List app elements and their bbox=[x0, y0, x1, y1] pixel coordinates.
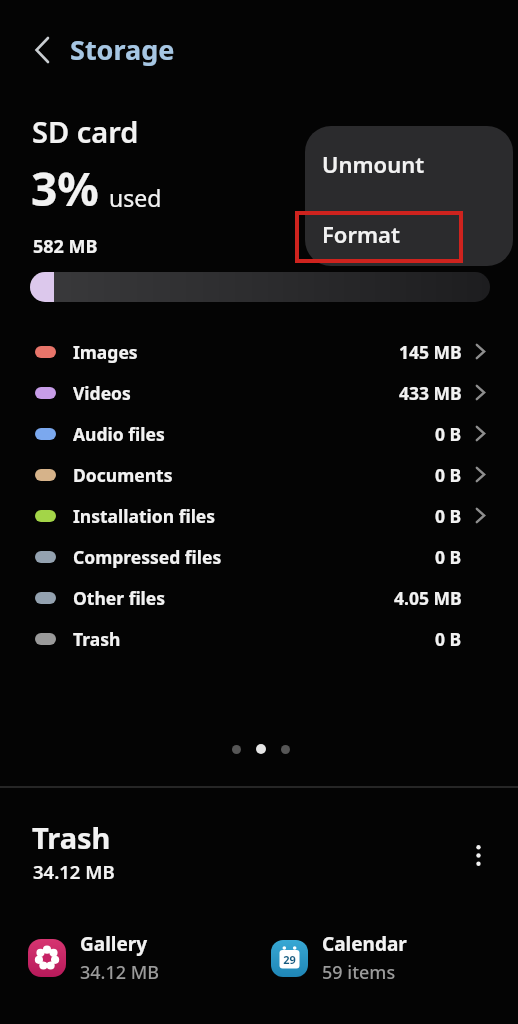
staticText: 0 B bbox=[435, 627, 462, 651]
staticText: Trash bbox=[73, 627, 121, 651]
staticText: 0 B bbox=[435, 463, 462, 487]
staticText: Audio files bbox=[73, 422, 165, 446]
button[interactable] bbox=[24, 33, 58, 67]
button[interactable]: Gallery bbox=[28, 930, 238, 986]
staticText: 3% bbox=[31, 157, 99, 220]
button[interactable]: Compressed files bbox=[0, 536, 518, 577]
button[interactable]: Installation files bbox=[0, 495, 518, 536]
staticText: Other files bbox=[73, 586, 166, 610]
staticText: 34.12 MB bbox=[80, 960, 160, 985]
button[interactable]: Images bbox=[0, 331, 518, 372]
staticText: 0 B bbox=[435, 545, 462, 569]
staticText: 145 MB bbox=[399, 340, 462, 364]
staticText: Trash bbox=[32, 818, 111, 857]
button[interactable]: Format bbox=[305, 202, 513, 266]
staticText: 4.05 MB bbox=[394, 586, 462, 610]
staticText: Gallery bbox=[80, 931, 148, 957]
staticText: 59 items bbox=[322, 960, 396, 985]
staticText: used bbox=[109, 182, 162, 213]
staticText: Storage bbox=[70, 31, 175, 68]
button[interactable]: Audio files bbox=[0, 413, 518, 454]
staticText: 0 B bbox=[435, 504, 462, 528]
staticText: Unmount bbox=[322, 149, 425, 179]
button[interactable]: Trash bbox=[0, 618, 518, 659]
staticText: Calendar bbox=[322, 931, 407, 957]
button[interactable]: Other files bbox=[0, 577, 518, 618]
button[interactable]: Unmount bbox=[305, 126, 513, 202]
button[interactable] bbox=[458, 833, 498, 877]
button[interactable]: Documents bbox=[0, 454, 518, 495]
staticText: 29 bbox=[283, 952, 296, 967]
staticText: Videos bbox=[73, 381, 131, 405]
staticText: Compressed files bbox=[73, 545, 222, 569]
staticText: Images bbox=[73, 340, 138, 364]
staticText: 433 MB bbox=[399, 381, 462, 405]
button[interactable]: 29 bbox=[271, 930, 481, 986]
staticText: Format bbox=[322, 219, 400, 249]
button[interactable]: Videos bbox=[0, 372, 518, 413]
staticText: SD card bbox=[32, 112, 139, 151]
staticText: Installation files bbox=[73, 504, 216, 528]
staticText: Documents bbox=[73, 463, 173, 487]
staticText: 34.12 MB bbox=[33, 859, 115, 884]
staticText: 0 B bbox=[435, 422, 462, 446]
staticText: 582 MB bbox=[33, 234, 98, 259]
